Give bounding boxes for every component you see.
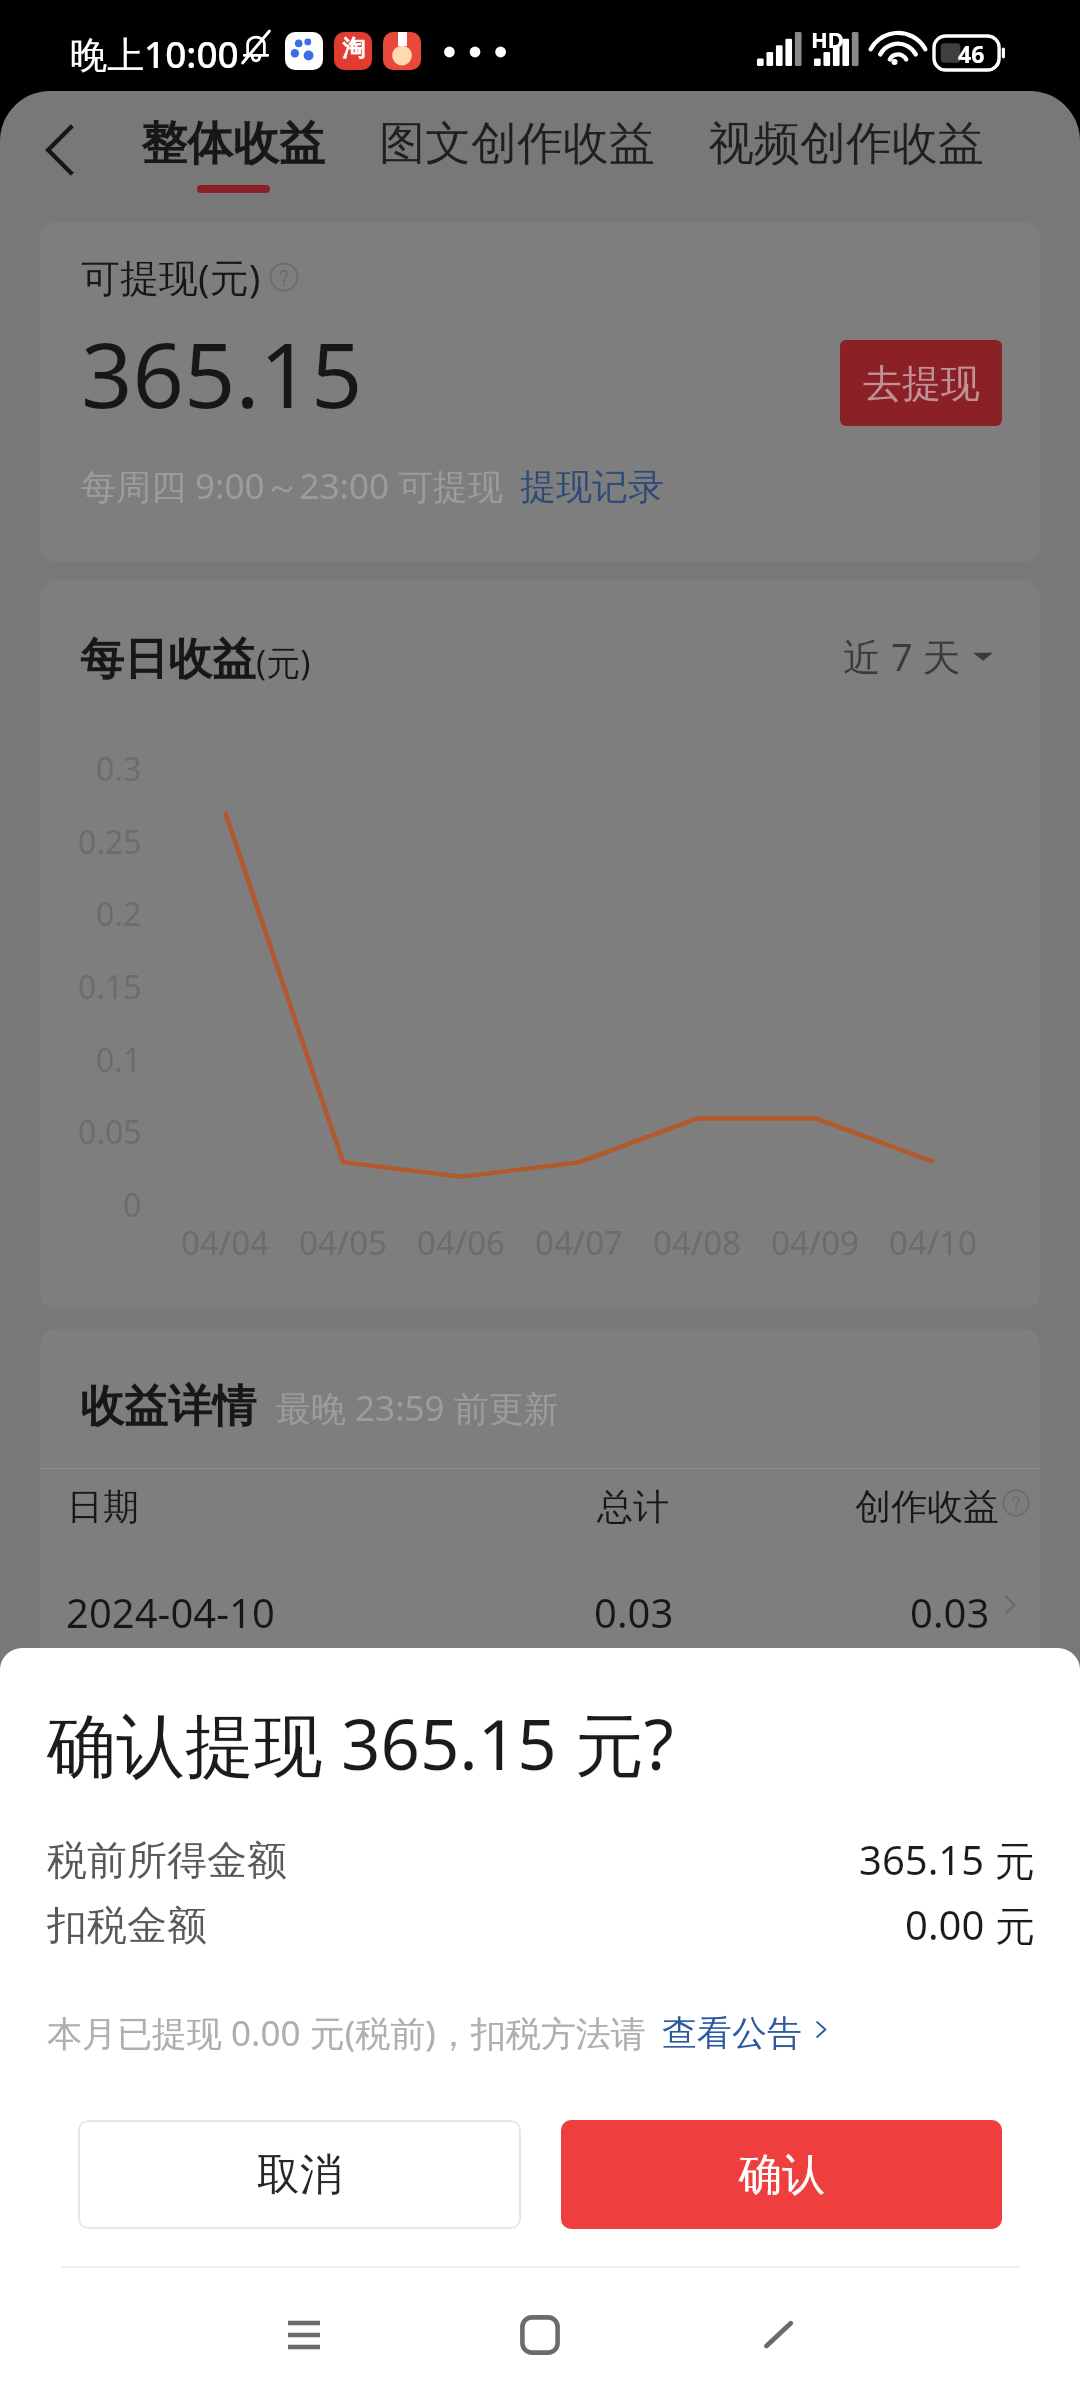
button[interactable]: 2024-04-10 <box>40 1575 1040 1655</box>
button[interactable]: 提现记录 <box>520 464 664 509</box>
staticText: 04/04 <box>145 1220 305 1265</box>
staticText: 可提现(元) <box>81 250 261 303</box>
staticText: 0.03 <box>910 1585 990 1639</box>
button[interactable]: 取消 <box>78 2120 521 2229</box>
staticText: 取消 <box>257 2148 343 2202</box>
staticText: 近 7 天 <box>843 630 961 682</box>
staticText: 46 <box>958 38 985 69</box>
staticText: 0.1 <box>96 1038 142 1082</box>
staticText: 税前所得金额 <box>47 1835 287 1885</box>
staticText: 0.03 <box>594 1585 674 1639</box>
staticText: 0.05 <box>78 1110 142 1154</box>
staticText: 04/07 <box>499 1220 659 1265</box>
staticText: 晚上10:00 <box>70 28 239 79</box>
staticText: 0.3 <box>96 747 142 791</box>
staticText: 视频创作收益 <box>708 115 984 173</box>
button[interactable]: 确认 <box>561 2120 1002 2229</box>
staticText: 本月已提现 0.00 元(税前)，扣税方法请 <box>47 2009 646 2057</box>
button[interactable]: Recent apps <box>224 2275 384 2395</box>
staticText: 2024-04-10 <box>66 1585 275 1639</box>
staticText: 365.15 元 <box>859 1832 1035 1887</box>
button[interactable]: Back <box>21 111 99 189</box>
staticText: 确认 <box>739 2148 825 2202</box>
staticText: 365.15 <box>81 312 363 435</box>
staticText: 0.00 元 <box>905 1897 1035 1952</box>
staticText: 最晚 23:59 前更新 <box>276 1384 559 1432</box>
staticText: 0.25 <box>78 820 142 864</box>
staticText: 04/10 <box>853 1220 1013 1265</box>
staticText: 04/09 <box>735 1220 895 1265</box>
staticText: 整体收益 <box>141 115 325 173</box>
button[interactable]: 整体收益 <box>140 109 326 199</box>
staticText: 查看公告 <box>662 2011 802 2055</box>
staticText: 收益详情 <box>80 1379 256 1434</box>
staticText: 总计 <box>597 1484 669 1529</box>
staticText: HD <box>811 24 844 54</box>
staticText: 图文创作收益 <box>379 115 655 173</box>
button[interactable]: 视频创作收益 <box>707 109 985 199</box>
staticText: 确认提现 365.15 元? <box>47 1696 674 1790</box>
staticText: (元) <box>256 639 311 685</box>
staticText: 日期 <box>67 1484 139 1529</box>
button[interactable]: 去提现 <box>840 340 1002 426</box>
staticText: 0 <box>123 1183 142 1227</box>
button[interactable]: Back <box>699 2275 859 2395</box>
staticText: 04/06 <box>381 1220 541 1265</box>
staticText: 淘 <box>342 34 365 63</box>
staticText: 每周四 9:00～23:00 可提现 <box>81 462 504 510</box>
button[interactable]: 近 7 天 <box>843 630 993 682</box>
staticText: 04/08 <box>617 1220 777 1265</box>
staticText: 04/05 <box>263 1220 423 1265</box>
staticText: 扣税金额 <box>47 1900 207 1950</box>
staticText: 去提现 <box>863 359 980 408</box>
button[interactable]: 查看公告 <box>662 2011 832 2055</box>
button[interactable]: Home <box>460 2275 620 2395</box>
staticText: 每日收益 <box>80 632 256 687</box>
staticText: 0.15 <box>78 965 142 1009</box>
staticText: 创作收益 <box>855 1484 999 1529</box>
button[interactable]: 图文创作收益 <box>378 109 656 199</box>
staticText: 0.2 <box>96 892 142 936</box>
